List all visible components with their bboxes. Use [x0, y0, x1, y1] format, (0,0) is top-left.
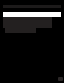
- button[interactable]: Action: [58, 77, 63, 81]
